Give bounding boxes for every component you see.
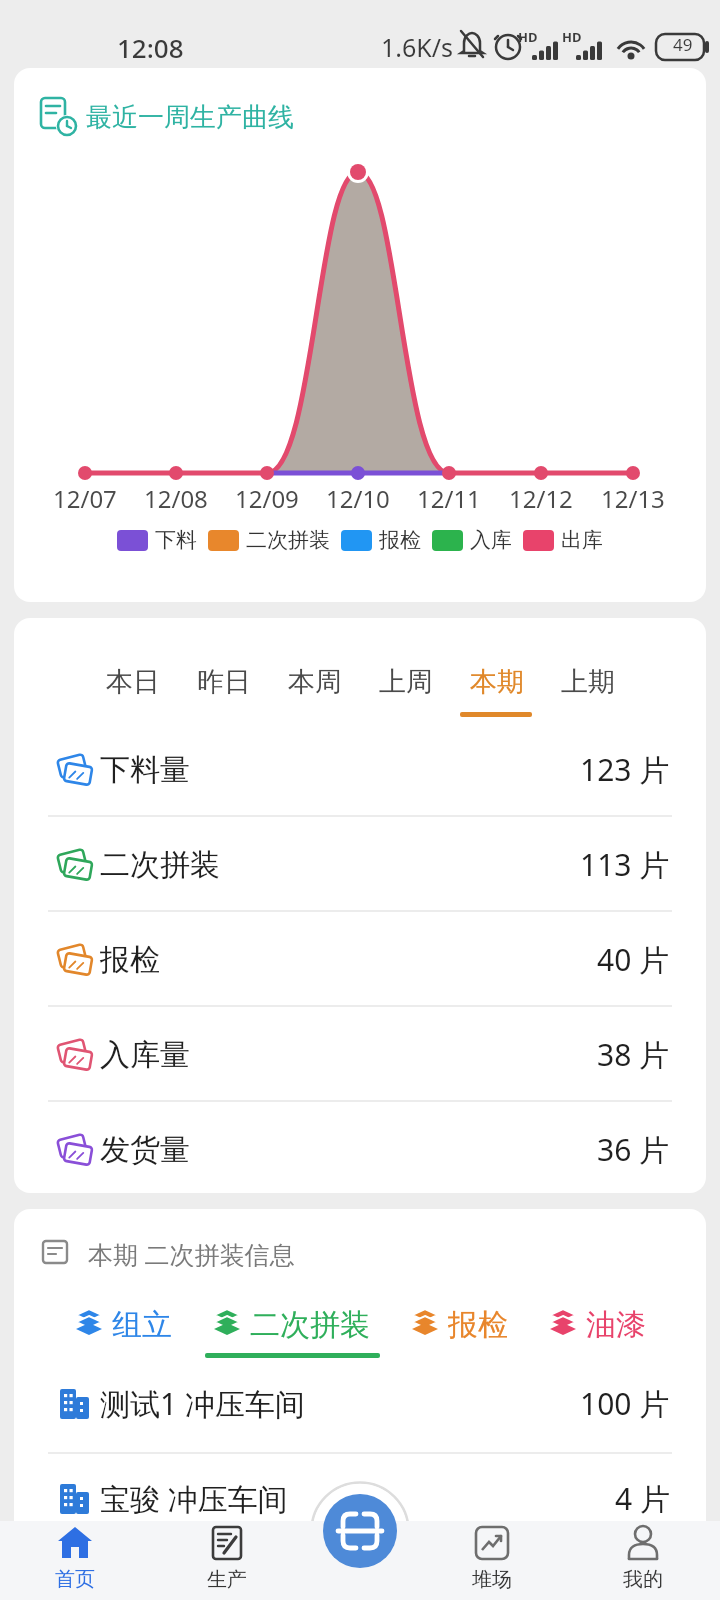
- button[interactable]: 本期: [470, 665, 524, 697]
- button[interactable]: 生产: [172, 1521, 282, 1600]
- staticText: 本期: [470, 665, 524, 697]
- staticText: 本周: [288, 665, 342, 697]
- staticText: 12/10: [326, 482, 390, 512]
- staticText: 上周: [379, 665, 433, 697]
- staticText: 12/13: [601, 482, 665, 512]
- staticText: 二次拼装: [250, 1306, 370, 1340]
- staticText: 测试1 冲压车间: [100, 1383, 305, 1424]
- staticText: 36 片: [597, 1129, 670, 1170]
- staticText: 123 片: [580, 749, 670, 790]
- staticText: 昨日: [197, 665, 251, 697]
- staticText: HD: [518, 28, 538, 46]
- staticText: 堆场: [472, 1567, 512, 1592]
- staticText: 100 片: [580, 1383, 670, 1424]
- button[interactable]: 昨日: [197, 665, 251, 697]
- staticText: 我的: [623, 1567, 663, 1592]
- button[interactable]: 报检: [14, 912, 706, 1007]
- staticText: 二次拼装: [100, 846, 220, 884]
- button[interactable]: 二次拼装: [212, 1306, 370, 1340]
- staticText: 12/12: [509, 482, 573, 512]
- button[interactable]: 本日: [106, 665, 160, 697]
- staticText: 4 片: [615, 1478, 670, 1519]
- staticText: 40 片: [597, 939, 670, 980]
- staticText: 本期 二次拼装信息: [88, 1237, 295, 1267]
- staticText: 12/11: [417, 482, 481, 512]
- button[interactable]: 二次拼装: [14, 817, 706, 912]
- staticText: 组立: [112, 1306, 172, 1340]
- button[interactable]: 我的: [588, 1521, 698, 1600]
- staticText: 12/07: [53, 482, 117, 512]
- button[interactable]: 本周: [288, 665, 342, 697]
- button[interactable]: 油漆: [548, 1306, 646, 1340]
- staticText: 出库: [561, 527, 603, 553]
- staticText: 报检: [448, 1306, 508, 1340]
- button[interactable]: 下料量: [14, 722, 706, 817]
- staticText: 12/08: [144, 482, 208, 512]
- button[interactable]: [323, 1494, 397, 1568]
- staticText: 宝骏 冲压车间: [100, 1478, 288, 1519]
- staticText: 入库量: [100, 1036, 190, 1074]
- staticText: 本日: [106, 665, 160, 697]
- button[interactable]: 上周: [379, 665, 433, 697]
- button[interactable]: 首页: [20, 1521, 130, 1600]
- button[interactable]: 测试1 冲压车间: [14, 1356, 706, 1451]
- staticText: 38 片: [597, 1034, 670, 1075]
- button[interactable]: 宝骏 冲压车间: [14, 1451, 706, 1546]
- staticText: 下料量: [100, 751, 190, 789]
- staticText: 1.6K/s: [381, 30, 454, 64]
- staticText: 最近一周生产曲线: [86, 101, 294, 133]
- button[interactable]: 上期: [561, 665, 615, 697]
- staticText: HD: [562, 28, 582, 46]
- staticText: 入库: [470, 527, 512, 553]
- button[interactable]: 发货量: [14, 1102, 706, 1193]
- staticText: 首页: [55, 1567, 95, 1592]
- staticText: 上期: [561, 665, 615, 697]
- staticText: 油漆: [586, 1306, 646, 1340]
- staticText: 49: [673, 33, 693, 56]
- button[interactable]: 报检: [410, 1306, 508, 1340]
- staticText: 报检: [100, 941, 160, 979]
- staticText: 二次拼装: [246, 527, 330, 553]
- staticText: 发货量: [100, 1131, 190, 1169]
- staticText: 下料: [155, 527, 197, 553]
- button[interactable]: 堆场: [437, 1521, 547, 1600]
- staticText: 113 片: [580, 844, 670, 885]
- staticText: 12/09: [235, 482, 299, 512]
- button[interactable]: 组立: [74, 1306, 172, 1340]
- staticText: 报检: [379, 527, 421, 553]
- button[interactable]: 入库量: [14, 1007, 706, 1102]
- staticText: 生产: [207, 1567, 247, 1592]
- staticText: 12:08: [117, 30, 184, 64]
